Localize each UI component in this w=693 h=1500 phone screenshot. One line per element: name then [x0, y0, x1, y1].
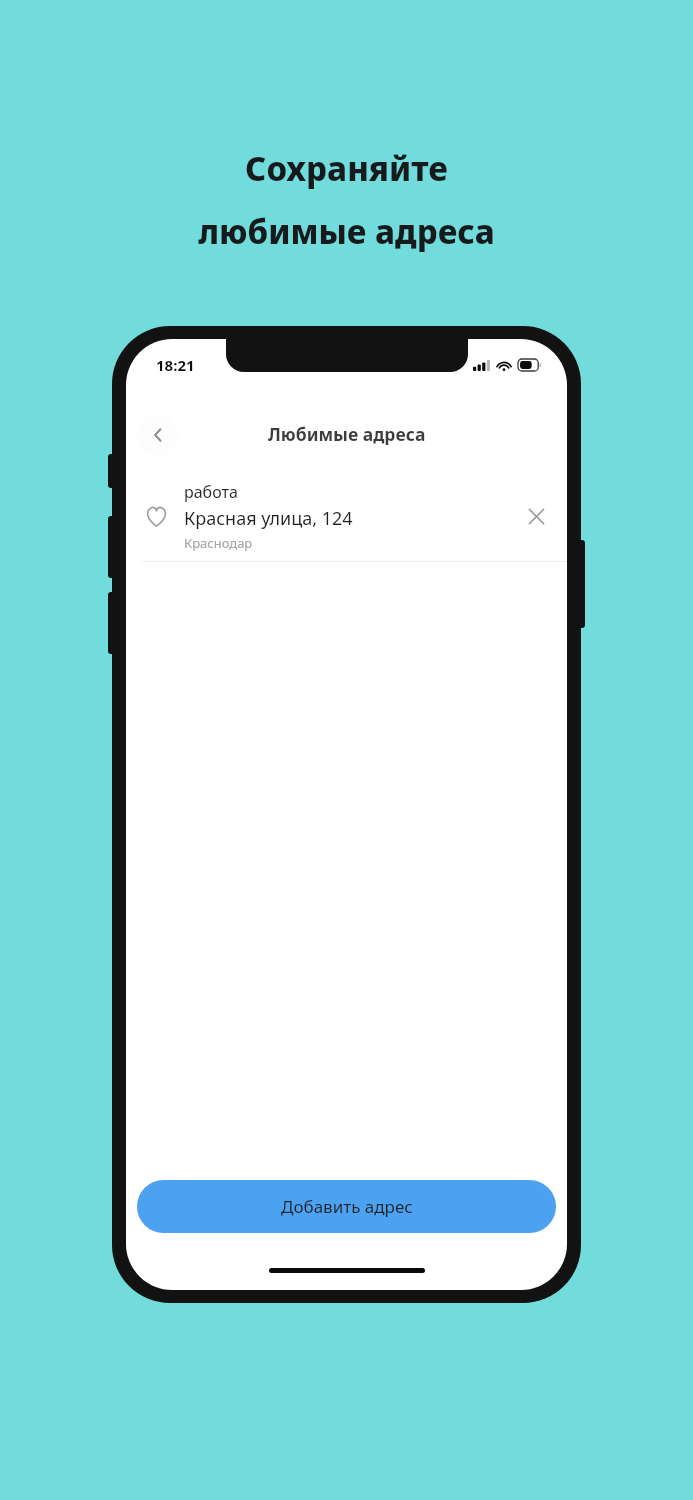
staticText: Сохраняйте	[245, 146, 448, 191]
staticText: 18:21	[156, 355, 195, 375]
staticText: Добавить адрес	[281, 1195, 413, 1218]
button[interactable]: Добавить адрес	[137, 1180, 556, 1233]
staticText: Красная улица, 124	[184, 506, 353, 531]
staticText: Краснодар	[184, 534, 253, 552]
staticText: Любимые адреса	[268, 422, 426, 446]
button[interactable]: Удалить адрес	[519, 499, 553, 533]
staticText: любимые адреса	[198, 209, 495, 254]
button[interactable]: работа	[126, 471, 567, 561]
staticText: работа	[184, 481, 238, 503]
button[interactable]: Назад	[137, 414, 178, 455]
